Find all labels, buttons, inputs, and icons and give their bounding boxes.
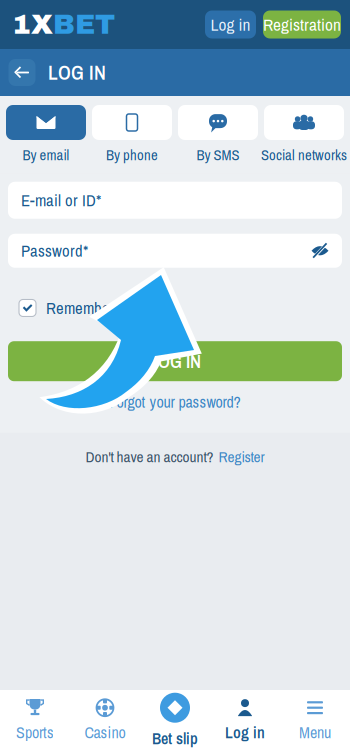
staticText: Social networks [261,145,347,165]
staticText: Forgot your password? [109,391,240,413]
button[interactable]: Remember me [19,297,138,319]
button[interactable]: Back [4,54,40,90]
staticText: Registration [263,13,341,36]
staticText: Log in [225,722,265,743]
staticText: Casino [84,722,125,743]
button[interactable]: Register [218,446,264,467]
staticText: Sports [16,722,54,743]
staticText: BET [53,9,115,40]
staticText: By SMS [196,145,239,165]
staticText: By email [22,145,69,165]
button[interactable]: By email [6,105,86,165]
button[interactable]: Casino [70,690,140,752]
staticText: 1X [12,9,53,40]
button[interactable]: Log in [205,10,256,38]
staticText: LOG IN [48,59,106,86]
button[interactable]: Social networks [264,105,344,165]
button[interactable]: Log in [210,690,280,752]
button[interactable]: Show password [306,237,334,265]
staticText: LOG IN [149,349,201,374]
button[interactable]: Registration [263,10,341,38]
staticText: Register [218,446,264,467]
button[interactable]: Forgot your password? [109,387,240,417]
staticText: Menu [299,722,331,743]
button[interactable]: Menu [280,690,350,752]
staticText: Don't have an account? [85,446,213,467]
staticText: By phone [106,145,158,165]
staticText: Log in [210,13,250,36]
button[interactable]: By phone [92,105,172,165]
button[interactable]: By SMS [178,105,258,165]
button[interactable]: Bet slip [140,690,210,752]
staticText: Bet slip [152,728,198,749]
staticText: Password* [21,239,88,262]
staticText: Remember me [46,297,138,319]
button[interactable]: LOG IN [8,341,342,381]
button[interactable]: Sports [0,690,70,752]
staticText: E-mail or ID* [21,189,101,211]
